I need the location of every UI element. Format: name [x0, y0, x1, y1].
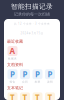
button[interactable]: P [32, 69, 43, 83]
staticText: 发票 [34, 80, 40, 83]
staticText: 记录你的每一次扫描 [14, 12, 50, 16]
staticText: T [35, 92, 40, 100]
staticText: P [47, 69, 52, 79]
button[interactable]: T [32, 92, 43, 100]
staticText: 报告 [9, 80, 15, 83]
staticText: T [10, 92, 15, 100]
staticText: 合同 [22, 80, 28, 83]
staticText: T [47, 92, 52, 100]
button[interactable]: A [7, 46, 18, 60]
staticText: 文本笔记 [7, 85, 23, 90]
staticText: A [9, 46, 15, 56]
staticText: P [10, 69, 15, 79]
staticText: 最近收藏 [7, 39, 23, 44]
button[interactable]: T [44, 92, 55, 100]
button[interactable]: T [7, 92, 18, 100]
staticText: 2024年3月15日 [20, 31, 43, 35]
button[interactable]: P [44, 69, 55, 83]
staticText: 智能扫描记录 [11, 2, 53, 11]
staticText: 文档资料 [7, 62, 23, 67]
staticText: 说明 [47, 80, 53, 83]
staticText: T [22, 92, 27, 100]
staticText: 收藏夹 [8, 57, 17, 60]
staticText: P [22, 69, 27, 79]
button[interactable]: T [19, 92, 30, 100]
staticText: P [35, 69, 40, 79]
button[interactable]: P [7, 69, 18, 83]
button[interactable]: P [19, 69, 30, 83]
staticText: 共 12 个文件 · 3 个文件夹 [14, 22, 50, 25]
